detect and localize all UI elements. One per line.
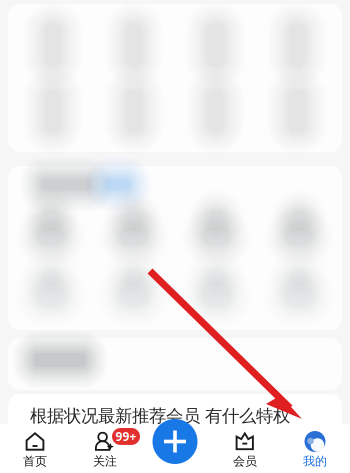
button[interactable] xyxy=(140,424,210,473)
button[interactable]: Create xyxy=(152,419,197,464)
button[interactable]: 我的 xyxy=(280,424,350,473)
staticText: 会员 xyxy=(233,454,257,469)
staticText: 我的 xyxy=(303,454,327,469)
staticText: 99+ xyxy=(115,428,136,444)
staticText: 关注 xyxy=(93,454,117,469)
button[interactable]: 首页 xyxy=(0,424,70,473)
staticText: 根据状况最新推荐会员 有什么特权 xyxy=(30,405,290,427)
button[interactable]: 会员 xyxy=(210,424,280,473)
button[interactable]: 99+ xyxy=(70,424,140,473)
staticText: 首页 xyxy=(23,454,47,469)
